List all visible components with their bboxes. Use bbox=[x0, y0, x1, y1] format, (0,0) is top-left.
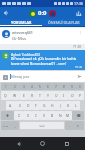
staticText: P bbox=[79, 93, 82, 98]
staticText: Or Mss bbox=[12, 36, 26, 42]
staticText: O bbox=[71, 93, 74, 98]
button[interactable]: 3 bbox=[19, 83, 28, 90]
button[interactable]: O bbox=[68, 91, 76, 100]
button[interactable]: 5 bbox=[36, 83, 44, 90]
button[interactable]: 2 bbox=[10, 83, 19, 90]
button[interactable]: H bbox=[48, 101, 56, 110]
staticText: E bbox=[23, 93, 25, 98]
button[interactable]: Back bbox=[0, 7, 12, 19]
staticText: Aykut Trabbm433 bbox=[11, 52, 40, 56]
staticText: 71:38 bbox=[73, 45, 82, 49]
staticText: 17:36 bbox=[74, 1, 83, 6]
button[interactable]: E bbox=[19, 91, 28, 100]
staticText: J bbox=[60, 103, 61, 108]
button[interactable]: C bbox=[32, 111, 40, 120]
button[interactable]: 6 bbox=[44, 83, 52, 90]
button[interactable]: Enter bbox=[73, 121, 84, 130]
button[interactable]: R bbox=[28, 91, 36, 100]
button[interactable]: S bbox=[15, 101, 24, 110]
button[interactable]: U bbox=[52, 91, 60, 100]
staticText: Bi?maaboad ek çOk buzandin bir bahis bbox=[11, 56, 77, 61]
staticText: 8 bbox=[63, 85, 65, 89]
staticText: 6 bbox=[47, 85, 49, 89]
staticText: Mesaj yaz bbox=[11, 74, 30, 79]
button[interactable]: Space bbox=[20, 122, 64, 129]
button[interactable]: I bbox=[60, 91, 68, 100]
button[interactable]: ÖNEMLİ OLAYLAR bbox=[42, 19, 85, 25]
staticText: N bbox=[59, 113, 62, 118]
staticText: D bbox=[27, 103, 30, 108]
button[interactable]: K bbox=[64, 101, 72, 110]
staticText: G bbox=[43, 103, 46, 108]
button[interactable]: Back bbox=[13, 138, 24, 149]
staticText: ÖNEMLİ OLAYLAR bbox=[48, 20, 80, 25]
button[interactable]: B bbox=[48, 111, 56, 120]
staticText: 0:0 bbox=[38, 9, 47, 17]
staticText: Q bbox=[4, 93, 7, 98]
staticText: 0 bbox=[79, 85, 81, 89]
staticText: , bbox=[15, 124, 16, 128]
staticText: L bbox=[75, 103, 77, 108]
button[interactable]: J bbox=[56, 101, 64, 110]
staticText: A bbox=[9, 103, 12, 108]
button[interactable]: Shift bbox=[1, 111, 14, 120]
button[interactable]: V bbox=[40, 111, 48, 120]
button[interactable]: Z bbox=[14, 111, 23, 120]
button[interactable]: D bbox=[24, 101, 32, 110]
button[interactable]: Recent apps bbox=[61, 138, 72, 149]
button[interactable]: M bbox=[64, 111, 72, 120]
staticText: T bbox=[39, 93, 41, 98]
staticText: C bbox=[35, 113, 38, 118]
button[interactable]: Statistics bbox=[73, 7, 85, 19]
button[interactable]: Mesaj yaz bbox=[10, 74, 76, 79]
button[interactable]: Aykut Trabbm433 bbox=[2, 52, 83, 68]
button[interactable]: L bbox=[72, 101, 80, 110]
button[interactable]: YORUMLAR bbox=[0, 19, 42, 25]
button[interactable]: Q bbox=[1, 91, 10, 100]
staticText: Y bbox=[47, 93, 49, 98]
staticText: Z bbox=[18, 113, 20, 118]
button[interactable]: Send bbox=[76, 73, 83, 80]
staticText: U bbox=[55, 93, 58, 98]
staticText: S bbox=[19, 103, 21, 108]
button[interactable]: W bbox=[10, 91, 19, 100]
staticText: mtevveq461 bbox=[12, 30, 33, 35]
button[interactable]: 4 bbox=[28, 83, 36, 90]
staticText: . bbox=[69, 124, 70, 128]
button[interactable]: Add image bbox=[2, 74, 8, 80]
button[interactable]: Backspace bbox=[72, 111, 84, 120]
button[interactable]: X bbox=[23, 111, 32, 120]
button[interactable]: More options bbox=[78, 30, 83, 35]
button[interactable]: 9 bbox=[68, 83, 76, 90]
button[interactable]: 0 bbox=[76, 83, 84, 90]
button[interactable]: P bbox=[76, 91, 84, 100]
button[interactable]: mtevveq461 bbox=[2, 30, 83, 42]
staticText: ?123 bbox=[3, 124, 9, 127]
staticText: 5 bbox=[39, 85, 41, 89]
staticText: YORUMLAR bbox=[11, 20, 32, 25]
button[interactable]: 8 bbox=[60, 83, 68, 90]
button[interactable]: G bbox=[40, 101, 48, 110]
staticText: B bbox=[51, 113, 54, 118]
button[interactable]: Y bbox=[44, 91, 52, 100]
staticText: 1 bbox=[5, 85, 7, 89]
staticText: H bbox=[51, 103, 54, 108]
staticText: 4 bbox=[31, 85, 33, 89]
button[interactable]: N bbox=[56, 111, 64, 120]
button[interactable]: 1 bbox=[1, 83, 10, 90]
staticText: 3 bbox=[23, 85, 25, 89]
staticText: M bbox=[66, 113, 70, 118]
staticText: 71:36 bbox=[75, 66, 83, 68]
button[interactable]: 7 bbox=[52, 83, 60, 90]
staticText: bone sitesi Bonusbonus01 . com' bbox=[11, 61, 67, 66]
button[interactable]: Home bbox=[37, 138, 48, 149]
staticText: F bbox=[35, 103, 37, 108]
staticText: K bbox=[67, 103, 70, 108]
button[interactable]: A bbox=[6, 101, 15, 110]
staticText: R bbox=[31, 93, 34, 98]
button[interactable]: ?123 bbox=[1, 121, 11, 130]
button[interactable]: F bbox=[32, 101, 40, 110]
button[interactable]: T bbox=[36, 91, 44, 100]
